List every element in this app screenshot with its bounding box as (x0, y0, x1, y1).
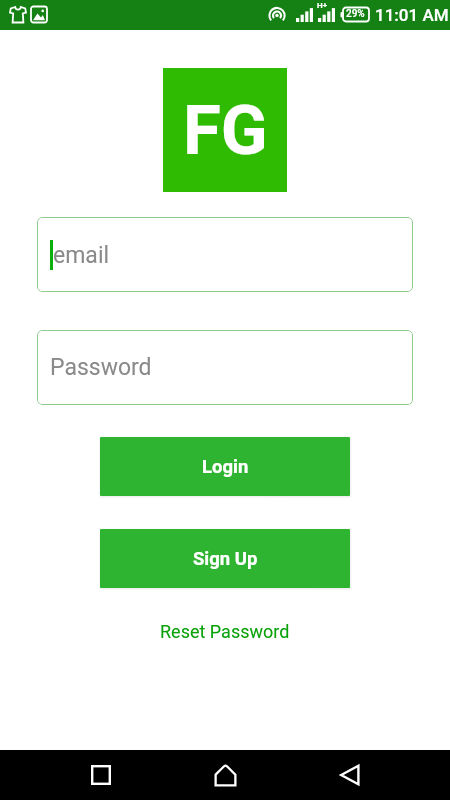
staticText: 11:01 AM (375, 5, 449, 25)
button[interactable]: Sign Up (100, 529, 350, 588)
button[interactable]: email (37, 217, 413, 292)
staticText: Password (50, 354, 152, 381)
staticText: Sign Up (193, 548, 258, 570)
staticText: Reset Password (160, 621, 290, 642)
staticText: H+ (317, 1, 328, 10)
staticText: 29% (346, 8, 365, 20)
button[interactable]: Back (326, 751, 374, 799)
button[interactable]: Recents (77, 751, 125, 799)
staticText: email (53, 242, 110, 269)
button[interactable]: Home (201, 751, 249, 799)
staticText: Login (202, 456, 249, 478)
button[interactable]: Login (100, 437, 350, 496)
button[interactable]: Reset Password (152, 617, 298, 646)
button[interactable]: Password (37, 330, 413, 405)
staticText: FG (183, 90, 268, 171)
